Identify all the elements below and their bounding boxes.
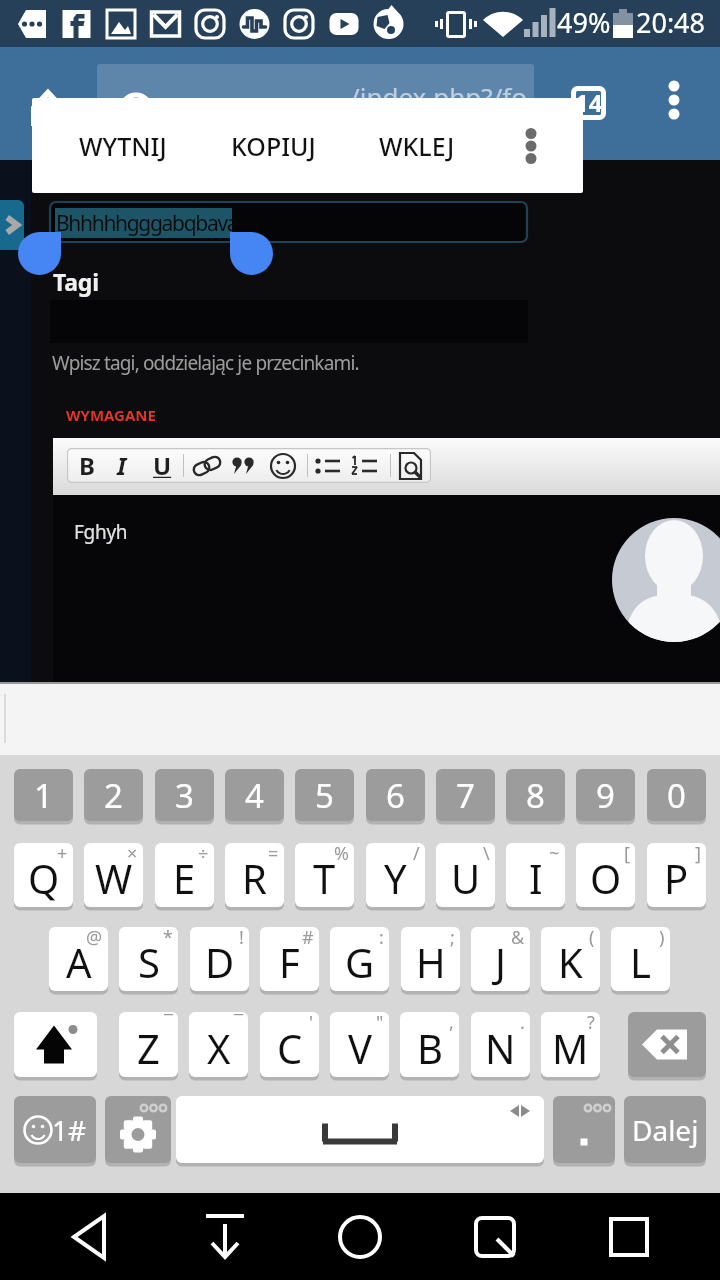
button[interactable]: 3: [155, 769, 214, 821]
staticText: *: [163, 927, 173, 950]
button[interactable]: P: [647, 843, 706, 907]
staticText: 6: [386, 773, 405, 818]
staticText: :: [379, 927, 384, 950]
button[interactable]: Avatar: [612, 518, 720, 642]
button[interactable]: 8: [506, 769, 565, 821]
staticText: .: [520, 1012, 525, 1035]
button[interactable]: S: [119, 927, 178, 991]
button[interactable]: E: [155, 843, 214, 907]
button[interactable]: shift: [14, 1012, 97, 1077]
button[interactable]: smiley: [265, 448, 301, 483]
staticText: ¯: [164, 1012, 173, 1035]
button[interactable]: KOPIUJ: [200, 98, 346, 193]
staticText: WYMAGANE: [66, 405, 156, 425]
button[interactable]: backspace: [628, 1012, 706, 1077]
button[interactable]: O: [576, 843, 635, 907]
button[interactable]: U: [436, 843, 495, 907]
button[interactable]: N: [471, 1012, 530, 1077]
staticText: ;: [450, 927, 455, 950]
button[interactable]: Home: [316, 1193, 404, 1280]
button[interactable]: More options: [652, 78, 696, 122]
staticText: @: [86, 927, 103, 950]
staticText: /: [413, 843, 420, 866]
button[interactable]: J: [471, 927, 530, 991]
staticText: 1: [34, 773, 53, 818]
button[interactable]: Hide keyboard: [181, 1193, 269, 1280]
button[interactable]: X: [189, 1012, 248, 1077]
button[interactable]: period: [553, 1096, 615, 1163]
staticText: U: [451, 851, 481, 905]
button[interactable]: quote: [226, 448, 262, 483]
button[interactable]: K: [541, 927, 600, 991]
button[interactable]: Back: [47, 1193, 135, 1280]
button[interactable]: enter: [624, 1096, 706, 1163]
button[interactable]: ul: [310, 448, 346, 483]
button[interactable]: M: [541, 1012, 600, 1077]
staticText: (: [589, 927, 595, 950]
button[interactable]: T: [295, 843, 354, 907]
staticText: /index.php?/fo: [350, 79, 527, 114]
button[interactable]: G: [330, 927, 389, 991]
button[interactable]: Tabs: [571, 86, 606, 120]
staticText: X: [207, 1021, 231, 1075]
button[interactable]: H: [401, 927, 460, 991]
button[interactable]: F: [260, 927, 319, 991]
button[interactable]: 6: [366, 769, 425, 821]
staticText: Tagi: [53, 266, 99, 297]
button[interactable]: B: [400, 1012, 459, 1077]
staticText: Y: [384, 851, 407, 905]
staticText: A: [66, 935, 92, 989]
button[interactable]: link: [189, 448, 225, 483]
button[interactable]: I: [506, 843, 565, 907]
staticText: D: [205, 935, 235, 989]
button[interactable]: Expand sidebar: [0, 200, 24, 250]
button[interactable]: C: [260, 1012, 319, 1077]
staticText: ]: [695, 843, 701, 866]
button[interactable]: 2: [84, 769, 143, 821]
button[interactable]: Z: [119, 1012, 178, 1077]
button[interactable]: B: [69, 448, 105, 483]
button[interactable]: I: [104, 448, 140, 483]
staticText: O: [590, 851, 622, 905]
staticText: KOPIUJ: [231, 129, 316, 163]
staticText: Dalej: [632, 1111, 699, 1149]
button[interactable]: Recents: [585, 1193, 673, 1280]
button[interactable]: 4: [225, 769, 284, 821]
staticText: =: [268, 843, 279, 866]
staticText: Wpisz tagi, oddzielając je przecinkami.: [52, 350, 359, 376]
staticText: 4: [245, 773, 264, 818]
button[interactable]: 9: [576, 769, 635, 821]
staticText: N: [485, 1021, 516, 1075]
button[interactable]: WYTNIJ: [50, 98, 196, 193]
button[interactable]: Q: [14, 843, 73, 907]
staticText: +: [57, 843, 68, 866]
button[interactable]: A: [49, 927, 108, 991]
button[interactable]: 1: [14, 769, 73, 821]
button[interactable]: R: [225, 843, 284, 907]
button[interactable]: settings: [105, 1096, 171, 1163]
button[interactable]: Y: [366, 843, 425, 907]
staticText: S: [138, 935, 160, 989]
button[interactable]: V: [330, 1012, 389, 1077]
button[interactable]: 5: [295, 769, 354, 821]
button[interactable]: W: [84, 843, 143, 907]
button[interactable]: preview: [393, 448, 429, 483]
button[interactable]: U: [144, 448, 180, 483]
button[interactable]: space: [176, 1096, 544, 1163]
button[interactable]: sym: [14, 1096, 96, 1163]
button[interactable]: 0: [647, 769, 706, 821]
button[interactable]: D: [190, 927, 249, 991]
button[interactable]: ol: [347, 448, 383, 483]
button[interactable]: More: [491, 98, 571, 193]
button[interactable]: 7: [436, 769, 495, 821]
staticText: W: [95, 851, 133, 905]
button[interactable]: Screenshot: [451, 1193, 539, 1280]
button[interactable]: Home: [20, 57, 76, 113]
staticText: E: [173, 851, 196, 905]
staticText: T: [313, 851, 336, 905]
staticText: 3: [175, 773, 194, 818]
button[interactable]: WKLEJ: [344, 98, 490, 193]
button[interactable]: L: [611, 927, 670, 991]
button[interactable]: /index.php?/fo: [97, 64, 534, 146]
